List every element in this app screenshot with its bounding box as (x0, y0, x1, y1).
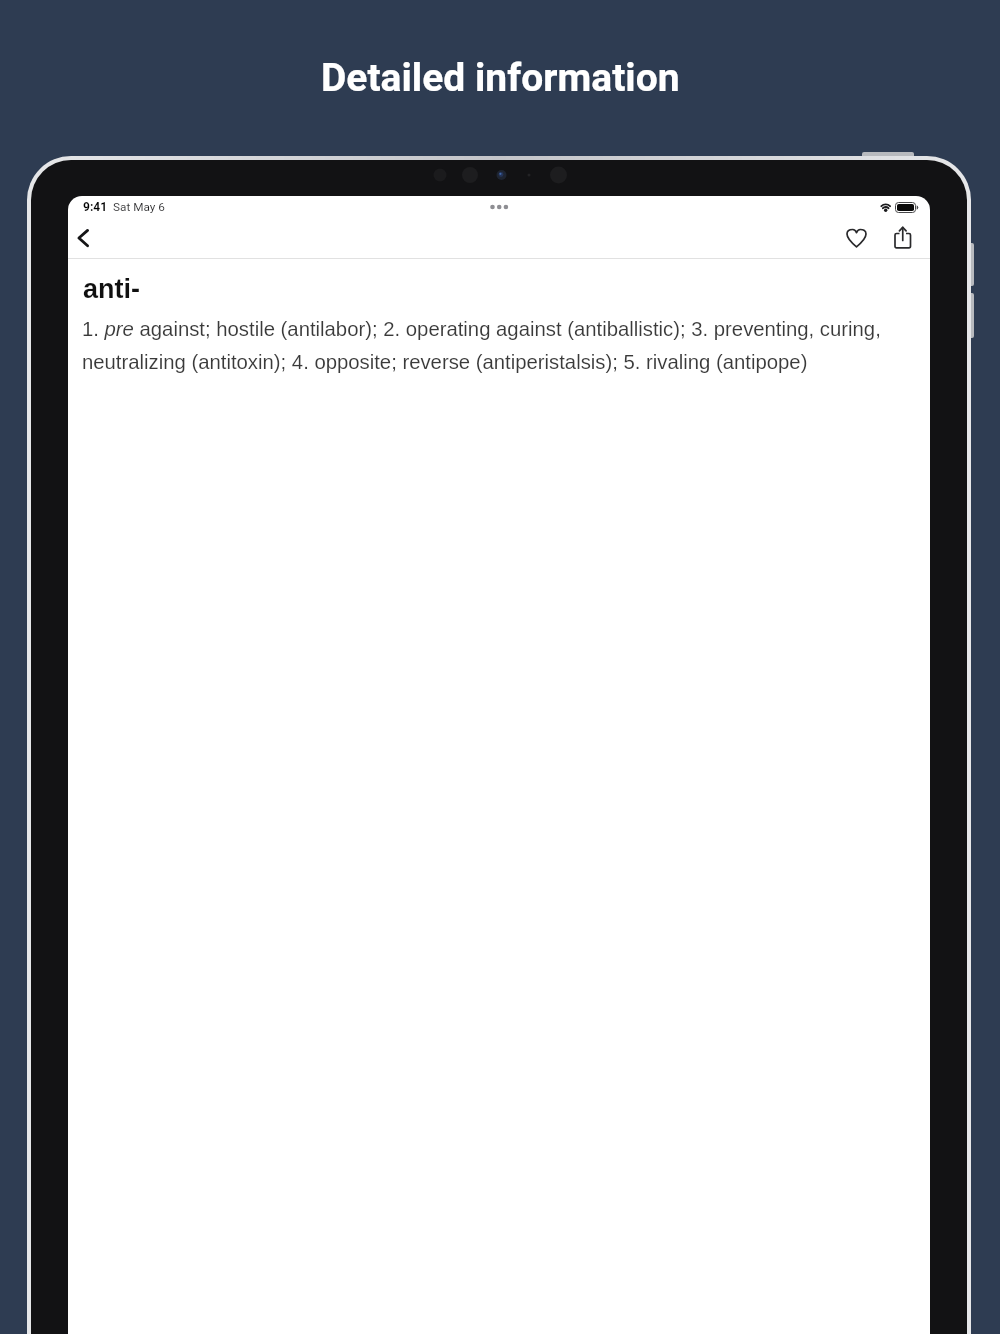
staticText: anti- (83, 274, 140, 304)
staticText: 9:41 (83, 200, 108, 214)
staticText: Sat May 6 (113, 200, 165, 214)
staticText: neutralizing (antitoxin); 4. opposite; r… (82, 351, 808, 374)
button[interactable] (72, 222, 98, 248)
staticText: Detailed information (321, 55, 680, 101)
button[interactable] (842, 224, 870, 252)
button[interactable] (889, 221, 919, 251)
staticText: 1. pre against; hostile (antilabor); 2. … (82, 318, 881, 341)
